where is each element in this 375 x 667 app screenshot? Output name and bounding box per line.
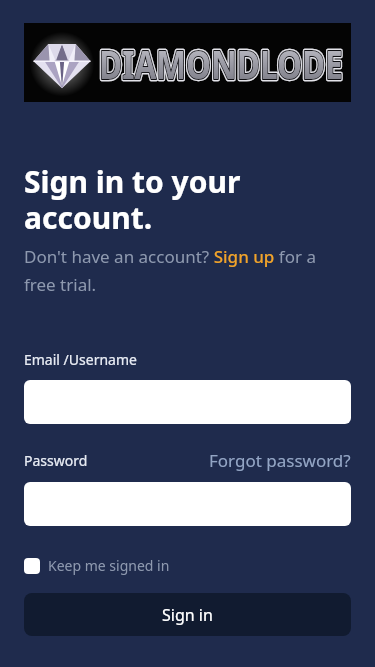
staticText: DIAMONDLODE (99, 36, 343, 90)
staticText: Email /Username (24, 350, 137, 369)
staticText: DIAMONDLODE (99, 36, 343, 90)
staticText: Forgot password? (209, 449, 351, 472)
button[interactable]: Keep me signed in (24, 556, 170, 575)
button[interactable] (24, 482, 351, 526)
staticText: Password (24, 451, 88, 470)
staticText: Sign in (162, 604, 213, 626)
staticText: Don't have an account? Sign up for a fre… (24, 245, 316, 296)
staticText: Keep me signed in (48, 556, 170, 575)
staticText: Sign in to your account. (24, 161, 241, 238)
button[interactable]: Forgot password? (209, 449, 351, 472)
button[interactable]: Sign in (24, 593, 351, 636)
button[interactable] (24, 380, 351, 424)
staticText: DIAMONDLODE (99, 36, 343, 90)
